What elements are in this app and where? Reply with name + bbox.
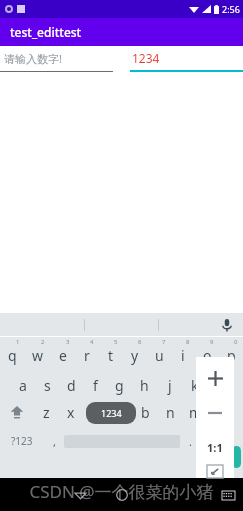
staticText: b bbox=[141, 403, 150, 422]
staticText: s bbox=[44, 376, 51, 395]
button[interactable]: Home bbox=[112, 485, 132, 505]
button[interactable]: Delete bbox=[208, 397, 243, 427]
button[interactable]: 6 bbox=[123, 337, 147, 367]
button[interactable]: h bbox=[132, 367, 157, 397]
button[interactable]: Shift bbox=[0, 397, 34, 427]
staticText: k bbox=[191, 376, 199, 395]
staticText: y bbox=[131, 346, 139, 365]
button[interactable]: 4 bbox=[75, 337, 99, 367]
button[interactable]: 1:1 bbox=[203, 435, 227, 459]
button[interactable]: m bbox=[183, 397, 208, 427]
button[interactable]: . bbox=[180, 427, 200, 455]
button[interactable]: Zoom out bbox=[203, 401, 227, 425]
button[interactable]: , bbox=[44, 427, 64, 455]
staticText: g bbox=[115, 376, 124, 395]
staticText: , bbox=[53, 434, 56, 449]
staticText: n bbox=[166, 403, 175, 422]
button[interactable]: k bbox=[182, 367, 207, 397]
staticText: o bbox=[203, 346, 212, 365]
staticText: 1 bbox=[16, 338, 20, 346]
staticText: 0 bbox=[234, 338, 238, 346]
staticText: 请输入数字! bbox=[4, 51, 62, 66]
button[interactable]: d bbox=[59, 367, 83, 397]
staticText: 8 bbox=[186, 338, 190, 346]
staticText: u bbox=[155, 346, 164, 365]
button[interactable]: 请输入数字! bbox=[0, 46, 121, 72]
button[interactable]: n bbox=[158, 397, 183, 427]
button[interactable]: v bbox=[108, 397, 133, 427]
staticText: t bbox=[108, 346, 114, 365]
staticText: 9 bbox=[210, 338, 214, 346]
button[interactable]: j bbox=[157, 367, 182, 397]
staticText: 1:1 bbox=[207, 440, 223, 455]
staticText: z bbox=[43, 403, 50, 422]
button[interactable]: 7 bbox=[147, 337, 171, 367]
staticText: 2 bbox=[41, 338, 45, 346]
button[interactable] bbox=[200, 427, 243, 455]
staticText: i bbox=[181, 346, 185, 365]
button[interactable]: b bbox=[133, 397, 158, 427]
button[interactable]: Back bbox=[70, 485, 90, 505]
staticText: 1234 bbox=[132, 50, 160, 66]
staticText: f bbox=[93, 376, 98, 395]
button[interactable]: 0 bbox=[219, 337, 243, 367]
staticText: m bbox=[189, 403, 203, 422]
button[interactable]: Keyboard bbox=[219, 486, 237, 504]
staticText: d bbox=[67, 376, 76, 395]
button[interactable]: l bbox=[207, 367, 232, 397]
staticText: a bbox=[19, 376, 27, 395]
button[interactable]: ?123 bbox=[0, 427, 44, 455]
button[interactable]: 9 bbox=[195, 337, 219, 367]
button[interactable]: s bbox=[35, 367, 59, 397]
button[interactable]: Resize bbox=[204, 465, 226, 478]
button[interactable]: 2 bbox=[25, 337, 50, 367]
button[interactable]: c bbox=[83, 397, 108, 427]
staticText: p bbox=[227, 346, 236, 365]
staticText: 2:56 bbox=[222, 3, 240, 15]
staticText: 5 bbox=[114, 338, 118, 346]
staticText: e bbox=[59, 346, 67, 365]
button[interactable]: 3 bbox=[50, 337, 75, 367]
staticText: 4 bbox=[90, 338, 94, 346]
staticText: w bbox=[32, 346, 44, 365]
button[interactable]: Zoom in bbox=[202, 365, 228, 391]
staticText: ?123 bbox=[11, 434, 33, 448]
button[interactable]: a bbox=[11, 367, 35, 397]
staticText: 6 bbox=[138, 338, 142, 346]
staticText: l bbox=[218, 376, 222, 395]
button[interactable]: 8 bbox=[171, 337, 195, 367]
staticText: h bbox=[140, 376, 149, 395]
staticText: 3 bbox=[66, 338, 70, 346]
button[interactable]: g bbox=[107, 367, 132, 397]
button[interactable]: z bbox=[34, 397, 58, 427]
staticText: test_edittest bbox=[10, 24, 82, 40]
button[interactable]: f bbox=[83, 367, 107, 397]
staticText: j bbox=[168, 376, 172, 395]
staticText: r bbox=[84, 346, 90, 365]
staticText: 1234 bbox=[101, 407, 122, 419]
button[interactable]: Drag handle bbox=[232, 446, 241, 468]
button[interactable]: 1234 bbox=[121, 46, 243, 72]
button[interactable]: 1 bbox=[0, 337, 25, 367]
staticText: x bbox=[67, 403, 75, 422]
button[interactable]: 5 bbox=[99, 337, 123, 367]
staticText: v bbox=[117, 403, 125, 422]
button[interactable]: Voice input bbox=[219, 317, 235, 333]
staticText: . bbox=[189, 434, 192, 449]
button[interactable]: x bbox=[58, 397, 83, 427]
staticText: CSDN @一个很菜的小猪 bbox=[0, 480, 243, 503]
staticText: q bbox=[8, 346, 17, 365]
staticText: 7 bbox=[162, 338, 166, 346]
